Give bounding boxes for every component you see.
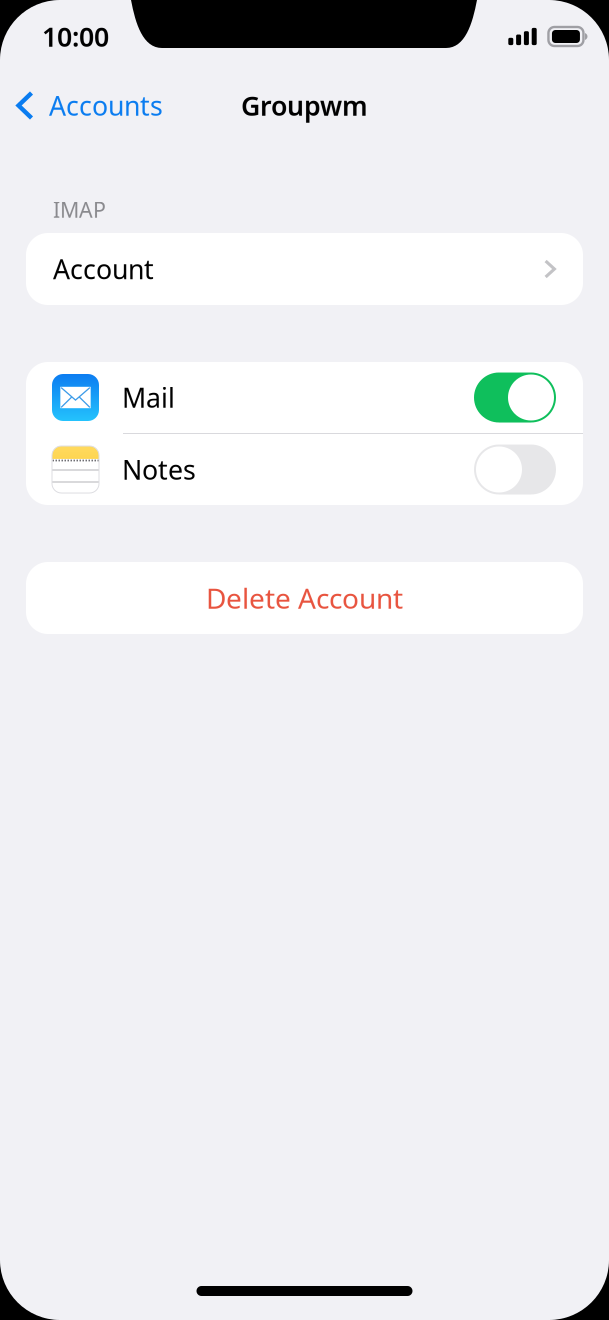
staticText: Groupwm	[241, 88, 368, 123]
staticText: IMAP	[53, 195, 106, 224]
button[interactable]: Account	[26, 233, 583, 305]
staticText: Notes	[122, 452, 196, 487]
button[interactable]: Delete Account	[26, 562, 583, 634]
staticText: 10:00	[42, 19, 109, 54]
staticText: Accounts	[49, 88, 163, 123]
button[interactable]: Accounts	[0, 74, 179, 136]
button[interactable]: Mail	[26, 362, 583, 433]
button[interactable]: Notes	[26, 434, 583, 505]
staticText: Mail	[122, 380, 175, 415]
staticText: Delete Account	[206, 579, 403, 617]
staticText: Account	[53, 251, 154, 287]
